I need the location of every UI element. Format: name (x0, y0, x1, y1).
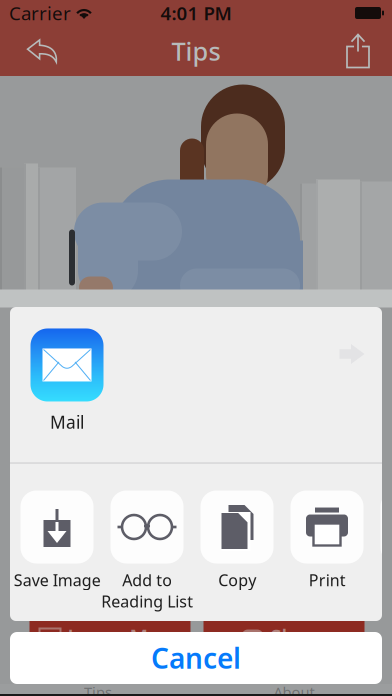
staticText: Share (270, 623, 326, 649)
staticText: Cancel (151, 639, 241, 677)
button[interactable]: Mail (19, 331, 115, 431)
staticText: Copy (218, 569, 256, 591)
button[interactable]: About (196, 684, 392, 694)
button[interactable]: Share (331, 26, 385, 76)
button[interactable]: Add to Reading List (92, 490, 202, 603)
button[interactable]: Tips (0, 684, 196, 694)
staticText: Carrier (9, 1, 71, 25)
staticText: 4:01 PM (160, 1, 231, 25)
staticText: Mail (50, 410, 84, 433)
button[interactable]: Back (13, 26, 71, 76)
staticText: Tips (171, 34, 220, 68)
button[interactable]: Print (272, 490, 382, 603)
staticText: Print (308, 569, 345, 591)
staticText: Learn More (67, 623, 180, 649)
staticText: Save Image (13, 569, 100, 591)
button[interactable]: Learn More (29, 618, 190, 654)
button[interactable]: Cancel (10, 632, 382, 684)
button[interactable]: Share (203, 618, 364, 654)
button[interactable]: More (325, 332, 379, 376)
staticText: About (273, 682, 314, 696)
button[interactable]: Copy (182, 490, 292, 603)
button[interactable]: Save Image (2, 490, 112, 603)
staticText: Tips (84, 682, 112, 696)
staticText: Add to Reading List (101, 569, 193, 612)
